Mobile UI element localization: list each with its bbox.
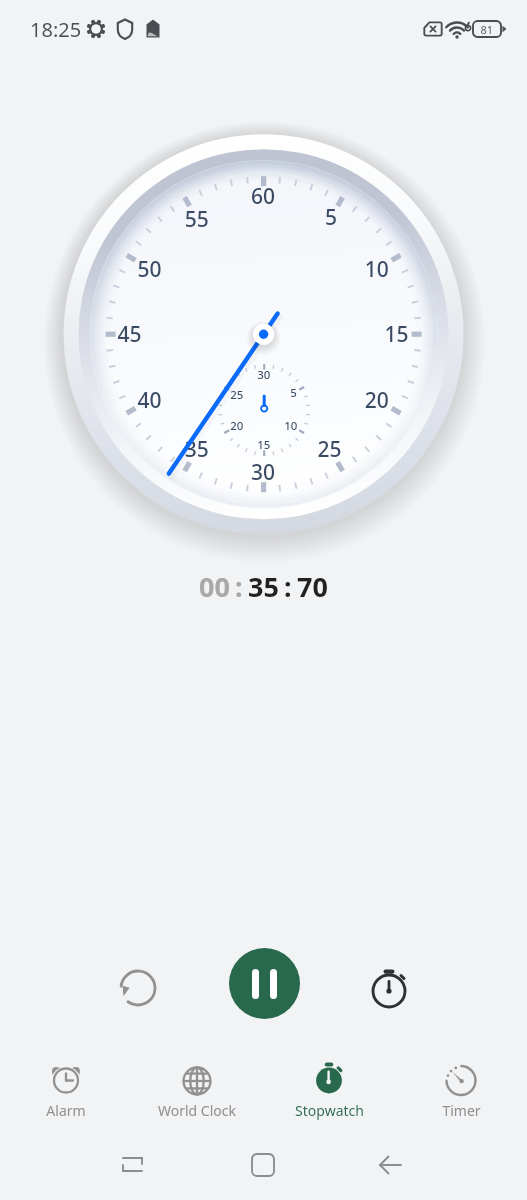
button[interactable]: Reset [113,963,163,1013]
staticText: 35 [248,568,279,605]
button[interactable]: Alarm [0,1042,131,1126]
staticText: 00 [199,568,230,605]
staticText: Timer [442,1101,481,1120]
staticText: 70 [297,568,328,605]
button[interactable]: Timer [395,1042,527,1126]
button[interactable]: Pause [229,948,300,1019]
staticText: Alarm [46,1101,86,1120]
button[interactable]: Stopwatch [263,1042,395,1126]
staticText: : [235,568,243,605]
staticText: World Clock [158,1101,236,1120]
staticText: : [284,568,292,605]
staticText: Stopwatch [295,1101,364,1120]
button[interactable]: Lap [364,965,414,1015]
staticText: 18:25 [30,16,82,43]
button[interactable]: World Clock [131,1042,263,1126]
